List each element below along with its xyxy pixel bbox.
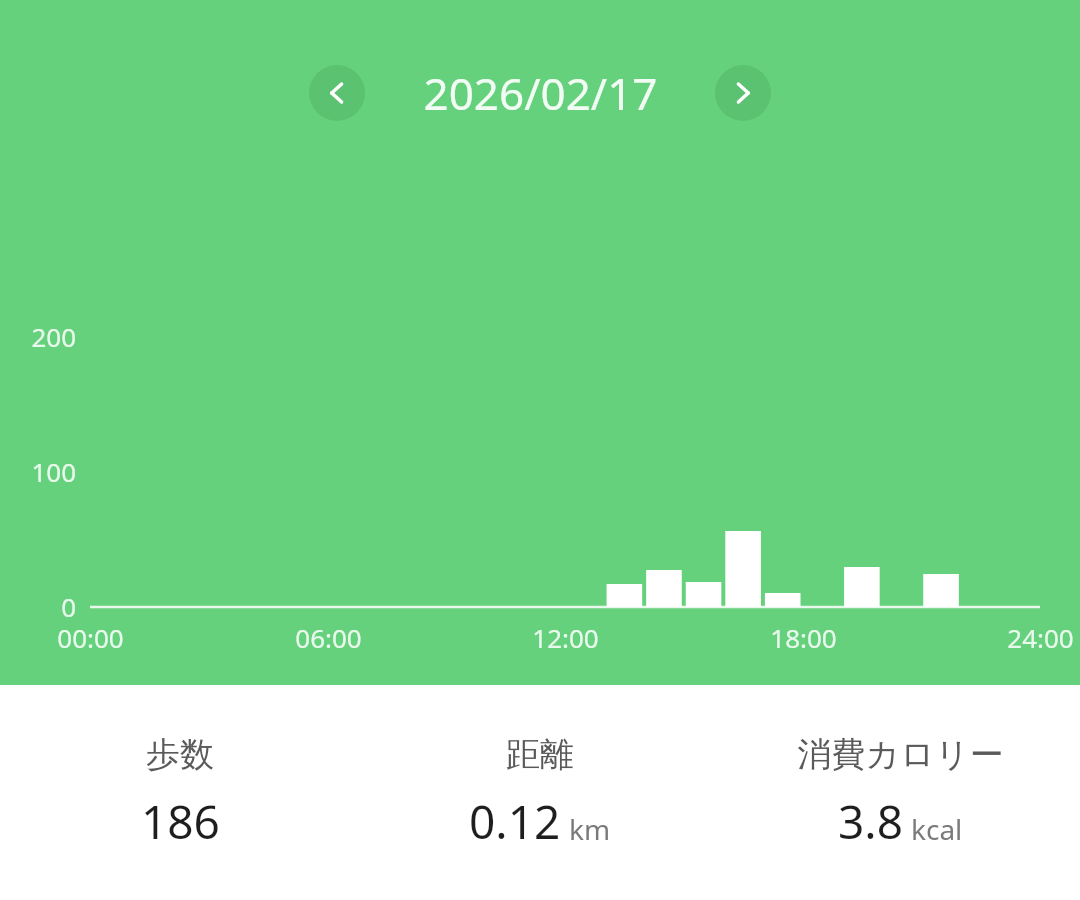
staticText: 消費カロリー bbox=[797, 733, 1004, 776]
staticText: 2026/02/17 bbox=[423, 63, 658, 123]
staticText: 00:00 bbox=[57, 620, 124, 655]
staticText: km bbox=[569, 810, 611, 848]
button[interactable]: 消費カロリー bbox=[720, 685, 1080, 900]
staticText: 距離 bbox=[506, 733, 574, 776]
button[interactable]: Previous day bbox=[309, 65, 365, 121]
button[interactable]: 歩数 bbox=[0, 685, 360, 900]
staticText: kcal bbox=[911, 810, 963, 848]
staticText: 24:00 bbox=[1007, 620, 1074, 655]
staticText: 18:00 bbox=[770, 620, 837, 655]
staticText: 0.12 bbox=[469, 790, 561, 853]
button[interactable]: 距離 bbox=[360, 685, 720, 900]
staticText: 200 bbox=[31, 319, 76, 354]
staticText: 12:00 bbox=[532, 620, 599, 655]
staticText: 100 bbox=[31, 454, 76, 489]
staticText: 186 bbox=[141, 790, 220, 853]
button[interactable]: Next day bbox=[715, 65, 771, 121]
staticText: 歩数 bbox=[146, 733, 214, 776]
staticText: 0 bbox=[61, 589, 76, 624]
staticText: 3.8 bbox=[838, 790, 903, 853]
staticText: 06:00 bbox=[295, 620, 362, 655]
